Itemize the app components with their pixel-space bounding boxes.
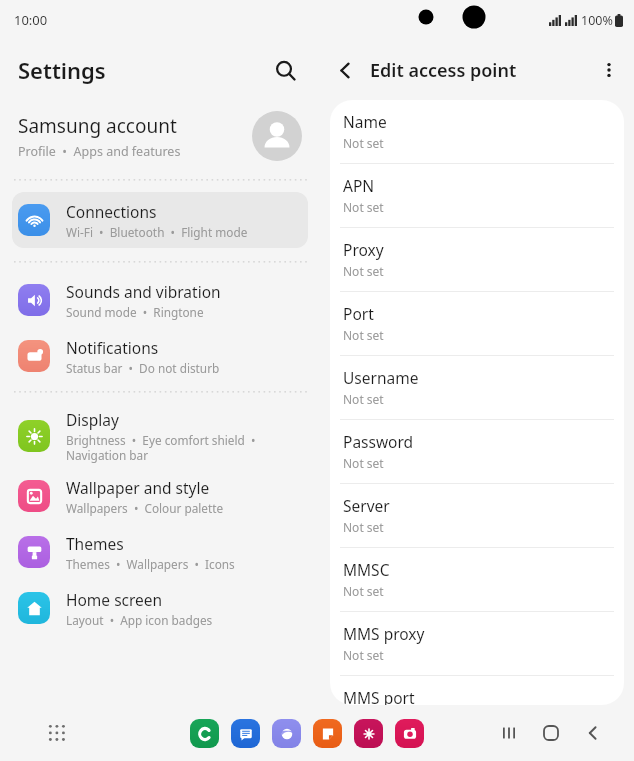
button[interactable]: Notifications <box>0 328 320 384</box>
staticText: MMSC <box>343 559 390 580</box>
button[interactable]: Back <box>326 51 364 89</box>
button[interactable]: msg <box>231 719 260 748</box>
button[interactable]: MMS port <box>330 676 624 705</box>
button[interactable]: Home <box>530 712 572 754</box>
staticText: Name <box>343 111 387 132</box>
button[interactable]: Samsung account <box>0 100 320 172</box>
button[interactable]: All apps <box>40 716 74 750</box>
staticText: Wallpapers • Colour palette <box>66 500 224 516</box>
staticText: Status bar • Do not disturb <box>66 360 220 376</box>
staticText: Settings <box>18 55 106 85</box>
button[interactable]: Port <box>330 292 624 355</box>
staticText: Edit access point <box>370 58 590 83</box>
staticText: APN <box>343 175 375 196</box>
staticText: Sounds and vibration <box>66 281 221 302</box>
button[interactable]: Connections <box>12 192 308 248</box>
staticText: Not set <box>343 199 384 215</box>
staticText: 100% <box>581 12 613 29</box>
button[interactable]: APN <box>330 164 624 227</box>
staticText: Not set <box>343 263 384 279</box>
staticText: Themes <box>66 533 124 554</box>
staticText: Brightness • Eye comfort shield • Naviga… <box>66 432 256 463</box>
staticText: Not set <box>343 455 384 471</box>
button[interactable]: Search <box>268 53 302 87</box>
staticText: Password <box>343 431 414 452</box>
button[interactable]: camera <box>395 719 424 748</box>
button[interactable]: Proxy <box>330 228 624 291</box>
staticText: Home screen <box>66 589 163 610</box>
button[interactable]: MMS proxy <box>330 612 624 675</box>
button[interactable]: Back <box>572 712 614 754</box>
staticText: Port <box>343 303 374 324</box>
staticText: Layout • App icon badges <box>66 612 213 628</box>
button[interactable]: MMSC <box>330 548 624 611</box>
button[interactable]: Name <box>330 100 624 163</box>
button[interactable]: Recents <box>488 712 530 754</box>
button[interactable]: notes <box>313 719 342 748</box>
staticText: Connections <box>66 201 157 222</box>
button[interactable]: phone <box>190 719 219 748</box>
staticText: Sound mode • Ringtone <box>66 304 204 320</box>
staticText: Notifications <box>66 337 159 358</box>
staticText: Display <box>66 409 119 430</box>
button[interactable]: Server <box>330 484 624 547</box>
staticText: Themes • Wallpapers • Icons <box>66 556 235 572</box>
staticText: Profile • Apps and features <box>18 143 181 160</box>
button[interactable]: Username <box>330 356 624 419</box>
staticText: Not set <box>343 583 384 599</box>
staticText: 10:00 <box>14 11 48 29</box>
button[interactable]: Password <box>330 420 624 483</box>
staticText: Samsung account <box>18 113 177 139</box>
staticText: Proxy <box>343 239 384 260</box>
button[interactable]: gallery <box>354 719 383 748</box>
button[interactable]: Home screen <box>0 580 320 636</box>
staticText: Not set <box>343 135 384 151</box>
button[interactable]: Display <box>0 404 320 468</box>
staticText: MMS port <box>343 687 415 705</box>
staticText: Not set <box>343 647 384 663</box>
staticText: Not set <box>343 519 384 535</box>
button[interactable]: internet <box>272 719 301 748</box>
staticText: Not set <box>343 391 384 407</box>
button[interactable]: Sounds and vibration <box>0 272 320 328</box>
staticText: Wallpaper and style <box>66 477 210 498</box>
staticText: Server <box>343 495 390 516</box>
staticText: Wi-Fi • Bluetooth • Flight mode <box>66 224 248 240</box>
button[interactable]: More options <box>590 51 628 89</box>
staticText: Not set <box>343 327 384 343</box>
staticText: MMS proxy <box>343 623 425 644</box>
staticText: Username <box>343 367 419 388</box>
button[interactable]: Wallpaper and style <box>0 468 320 524</box>
button[interactable]: Themes <box>0 524 320 580</box>
